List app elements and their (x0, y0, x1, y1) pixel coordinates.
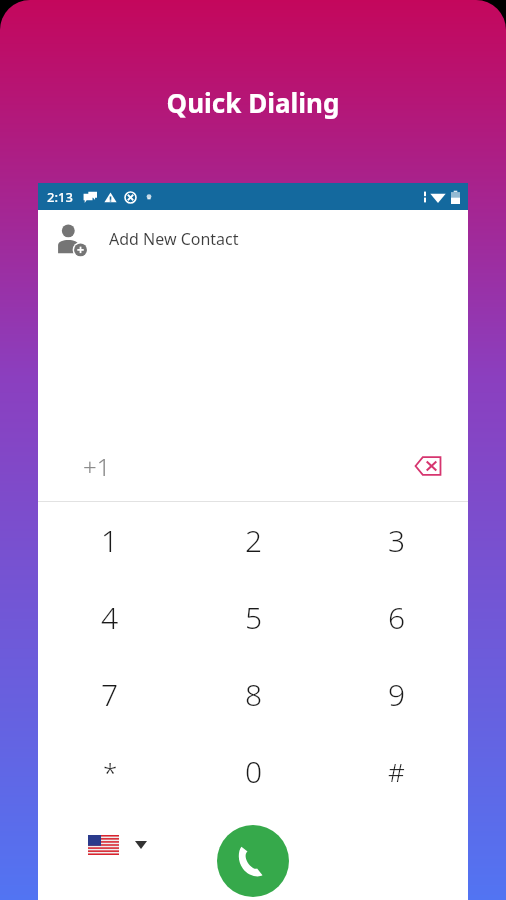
staticText: 4 (101, 597, 119, 638)
button[interactable]: 7 (38, 656, 182, 733)
button[interactable]: Call (217, 825, 289, 897)
staticText: Quick Dialing (0, 85, 506, 120)
button[interactable]: # (325, 733, 468, 810)
staticText: 9 (388, 674, 406, 715)
staticText: 8 (245, 674, 263, 715)
staticText: 3 (388, 520, 406, 561)
staticText: Add New Contact (109, 228, 239, 250)
staticText: +1 (83, 450, 111, 483)
button[interactable]: 8 (182, 656, 325, 733)
button[interactable]: 0 (182, 733, 325, 810)
staticText: 6 (388, 597, 406, 638)
button[interactable]: 9 (325, 656, 468, 733)
button[interactable]: 1 (38, 502, 182, 579)
button[interactable]: 6 (325, 579, 468, 656)
staticText: 7 (101, 674, 119, 715)
button[interactable]: 4 (38, 579, 182, 656)
button[interactable]: 2 (182, 502, 325, 579)
button[interactable]: * (38, 733, 182, 810)
staticText: * (103, 754, 118, 789)
button[interactable]: Add New Contact (38, 210, 468, 268)
staticText: 0 (245, 751, 263, 792)
button[interactable]: 5 (182, 579, 325, 656)
button[interactable]: Backspace (408, 446, 448, 486)
staticText: 2 (245, 520, 263, 561)
staticText: 1 (101, 520, 119, 561)
staticText: 5 (245, 597, 263, 638)
staticText: 2:13 (47, 188, 73, 206)
button[interactable]: 3 (325, 502, 468, 579)
button[interactable]: Select country (88, 835, 147, 855)
staticText: # (388, 754, 405, 789)
